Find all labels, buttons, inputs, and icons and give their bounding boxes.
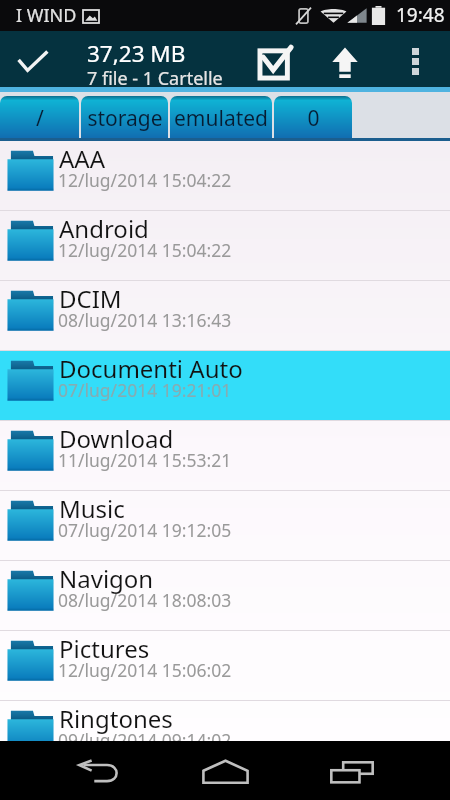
staticText: DCIM: [59, 282, 122, 315]
staticText: /: [36, 104, 44, 133]
staticText: emulated: [174, 104, 268, 133]
button[interactable]: Recent apps: [297, 741, 407, 800]
staticText: 0: [307, 104, 320, 133]
staticText: Pictures: [59, 632, 150, 665]
staticText: 37,23 MB: [87, 38, 186, 69]
button[interactable]: Music: [0, 491, 450, 560]
staticText: Navigon: [59, 562, 154, 595]
staticText: 11/lug/2014 15:53:21: [58, 448, 232, 472]
staticText: AAA: [59, 142, 106, 175]
staticText: Download: [59, 422, 174, 455]
button[interactable]: /: [0, 96, 79, 141]
button[interactable]: Up one level: [315, 31, 375, 87]
button[interactable]: Navigon: [0, 561, 450, 630]
button[interactable]: Home: [170, 741, 280, 800]
staticText: 09/lug/2014 09:14:02: [58, 728, 232, 752]
button[interactable]: Android: [0, 211, 450, 280]
staticText: 08/lug/2014 18:08:03: [58, 588, 232, 612]
staticText: I WIND: [16, 3, 77, 28]
staticText: 07/lug/2014 19:21:01: [58, 378, 232, 402]
button[interactable]: Select all: [243, 31, 305, 87]
button[interactable]: Back: [45, 741, 155, 800]
staticText: 12/lug/2014 15:04:22: [58, 168, 232, 192]
staticText: 12/lug/2014 15:04:22: [58, 238, 232, 262]
button[interactable]: Ringtones: [0, 701, 450, 770]
button[interactable]: More options: [393, 31, 438, 87]
button[interactable]: 0: [274, 96, 352, 141]
staticText: Music: [59, 492, 125, 525]
button[interactable]: AAA: [0, 141, 450, 210]
button[interactable]: storage: [81, 96, 168, 141]
staticText: Android: [59, 212, 149, 245]
button[interactable]: Download: [0, 421, 450, 490]
staticText: 08/lug/2014 13:16:43: [58, 308, 232, 332]
staticText: Ringtones: [59, 702, 173, 735]
button[interactable]: Pictures: [0, 631, 450, 700]
staticText: storage: [87, 104, 163, 133]
staticText: Documenti Auto: [59, 352, 243, 385]
button[interactable]: Documenti Auto: [0, 351, 450, 420]
button[interactable]: DCIM: [0, 281, 450, 350]
button[interactable]: emulated: [170, 96, 272, 141]
button[interactable]: Selection mode: [0, 31, 70, 87]
staticText: 19:48: [396, 2, 445, 28]
staticText: 7 file - 1 Cartelle: [87, 66, 223, 91]
staticText: 12/lug/2014 15:06:02: [58, 658, 232, 682]
staticText: 07/lug/2014 19:12:05: [58, 518, 232, 542]
